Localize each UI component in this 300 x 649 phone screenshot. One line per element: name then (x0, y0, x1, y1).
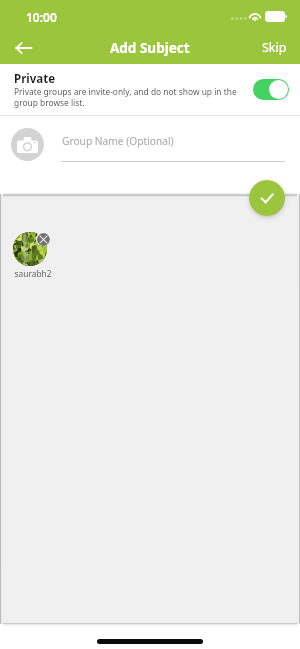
staticText: Group Name (Optional) (62, 134, 174, 148)
staticText: Skip (262, 39, 287, 56)
button[interactable]: Private toggle (253, 79, 289, 100)
button[interactable]: Remove saurabh2 (37, 233, 50, 246)
button[interactable]: Back (6, 34, 40, 62)
staticText: Add Subject (110, 39, 190, 57)
button[interactable]: Private (0, 64, 300, 115)
button[interactable]: Group Name (Optional) (61, 128, 285, 162)
button[interactable] (13, 232, 47, 266)
staticText: Private groups are invite-only, and do n… (14, 86, 246, 108)
button[interactable]: Skip (255, 34, 294, 61)
button[interactable]: Confirm (249, 180, 285, 216)
staticText: saurabh2 (14, 268, 52, 279)
button[interactable]: Add group photo (11, 128, 44, 161)
staticText: 10:00 (26, 9, 57, 25)
staticText: Private (14, 71, 56, 87)
